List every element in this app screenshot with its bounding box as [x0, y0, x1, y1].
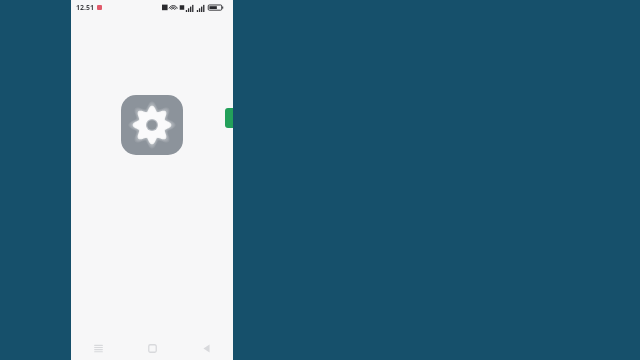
- button[interactable]: Home: [125, 336, 179, 360]
- button[interactable]: Open side panel: [225, 108, 233, 128]
- button[interactable]: Settings app: [121, 95, 183, 155]
- button[interactable]: Back: [179, 336, 233, 360]
- button[interactable]: Recent apps: [71, 336, 125, 360]
- staticText: 12.51: [76, 3, 94, 13]
